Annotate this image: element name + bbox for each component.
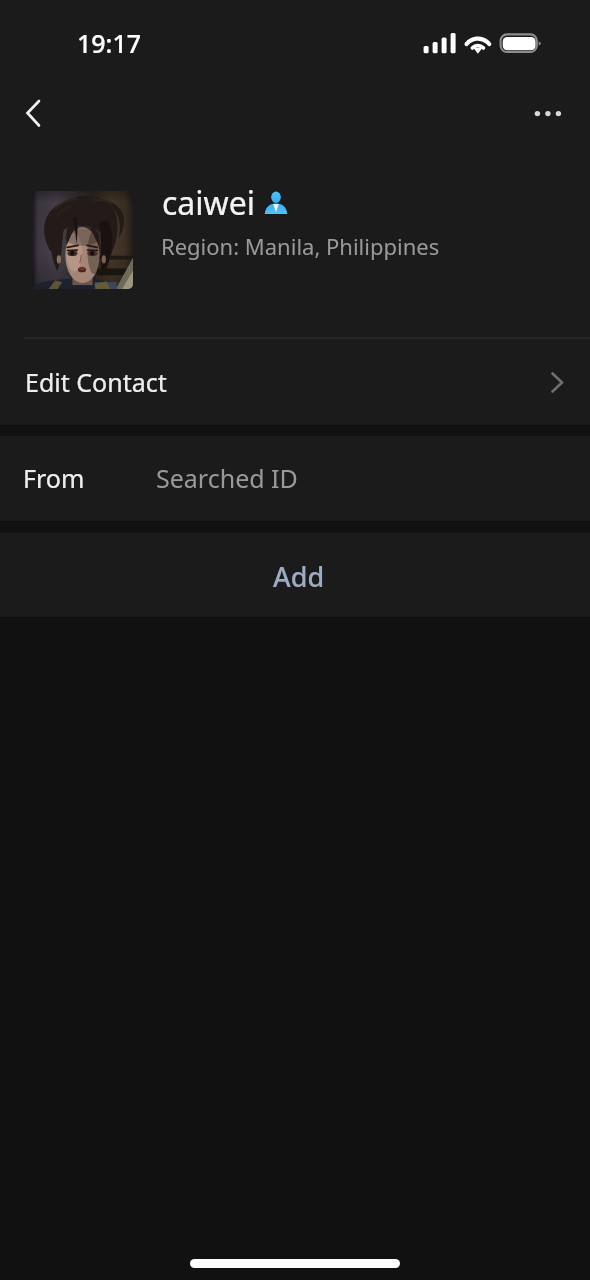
button[interactable]: More options — [510, 83, 574, 143]
staticText: From — [23, 461, 85, 495]
staticText: Searched ID — [156, 461, 298, 495]
staticText: Region: Manila, Philippines — [161, 231, 440, 261]
staticText: Add — [273, 558, 325, 595]
button[interactable]: caiwei — [0, 160, 590, 337]
staticText: Edit Contact — [25, 365, 167, 399]
staticText: 19:17 — [77, 26, 142, 60]
button[interactable]: From — [0, 436, 590, 521]
button[interactable]: Back — [2, 81, 62, 145]
button[interactable]: Edit Contact — [0, 338, 590, 425]
staticText: caiwei — [162, 181, 256, 225]
button[interactable]: Add — [0, 533, 590, 617]
